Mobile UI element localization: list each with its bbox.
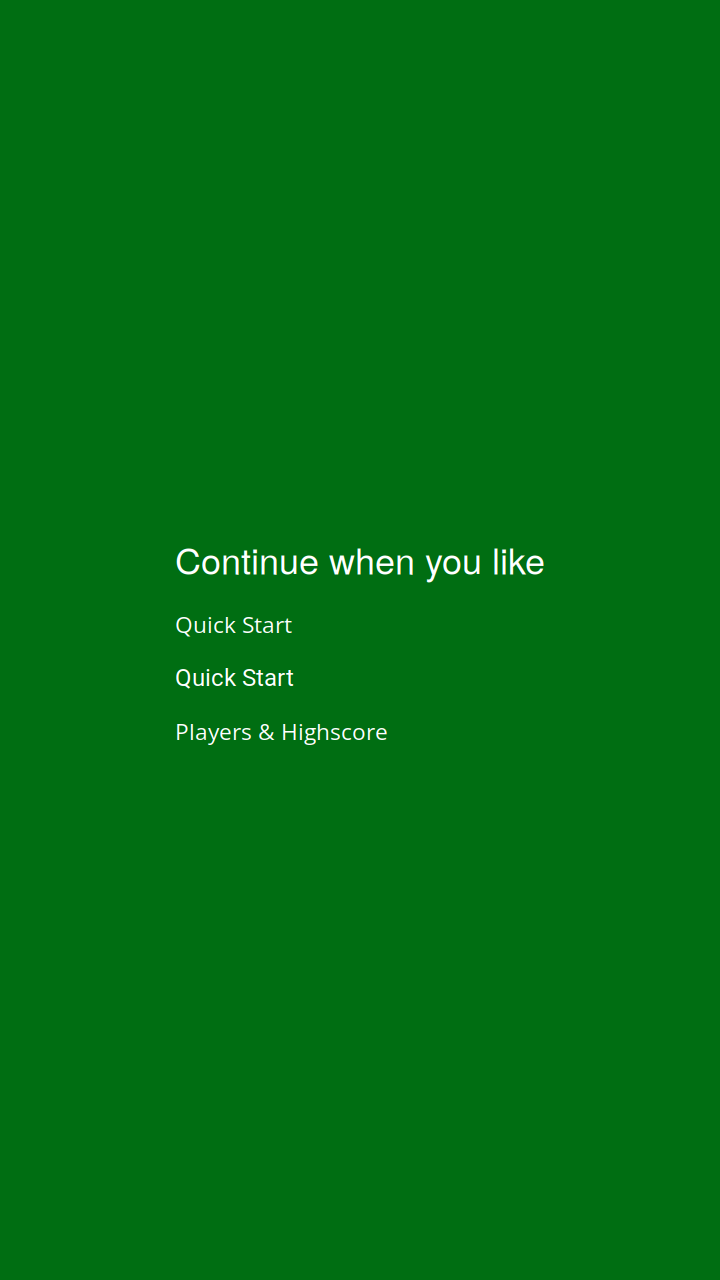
staticText: Players & Highscore xyxy=(175,716,388,747)
staticText: Quick Start xyxy=(175,609,292,640)
staticText: Continue when you like xyxy=(175,533,545,585)
staticText: Quick Start xyxy=(175,664,294,692)
